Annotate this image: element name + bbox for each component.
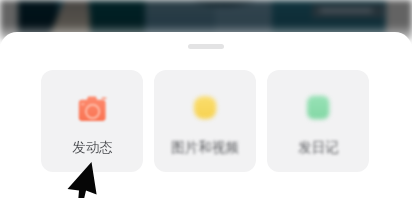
staticText: 发动态 (72, 139, 113, 156)
button[interactable]: 图片和视频 (154, 70, 256, 172)
staticText: 发日记 (298, 139, 339, 156)
button[interactable]: 发日记 (267, 70, 369, 172)
button[interactable]: 发动态 (41, 70, 143, 172)
staticText: 图片和视频 (171, 139, 239, 156)
